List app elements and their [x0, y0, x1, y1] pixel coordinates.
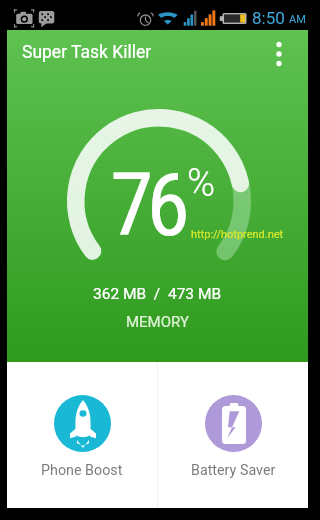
staticText: Super Task Killer	[22, 42, 152, 63]
staticText: 76	[110, 153, 183, 256]
button[interactable]: More options	[263, 38, 295, 70]
staticText: 362 MB / 473 MB	[93, 285, 222, 303]
staticText: Phone Boost	[41, 462, 123, 479]
button[interactable]: Phone Boost	[7, 362, 157, 508]
staticText: AM	[289, 13, 306, 26]
staticText: http://hotprend.net	[191, 228, 284, 241]
button[interactable]: Battery Saver	[158, 362, 308, 508]
staticText: 8:50	[252, 8, 285, 28]
staticText: Battery Saver	[191, 462, 276, 479]
staticText: %	[187, 161, 216, 206]
staticText: MEMORY	[126, 313, 189, 331]
